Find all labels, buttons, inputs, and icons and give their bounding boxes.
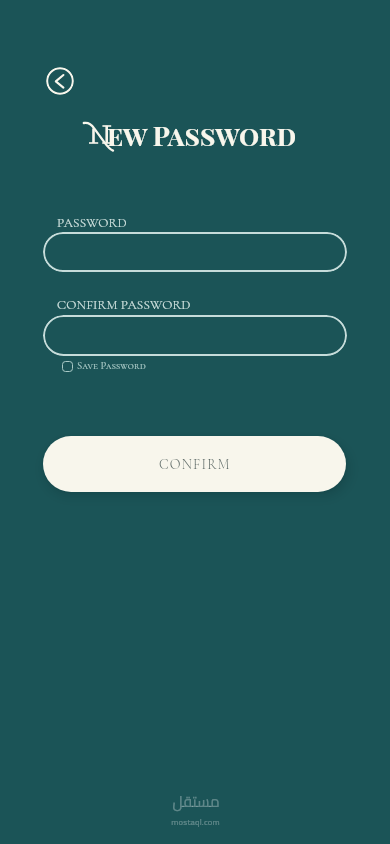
button[interactable]: Back [46, 67, 74, 95]
button[interactable]: Save Password [62, 359, 146, 372]
staticText: PASSWORD [57, 215, 127, 231]
staticText: CONFIRM [159, 456, 231, 473]
button[interactable] [43, 232, 347, 272]
staticText: مستقل [172, 787, 220, 815]
staticText: Save Password [77, 359, 146, 372]
button[interactable]: CONFIRM [43, 436, 346, 492]
staticText: ew Password [107, 117, 297, 152]
button[interactable] [43, 315, 347, 356]
staticText: mostaql.com [171, 814, 220, 830]
staticText: CONFIRM PASSWORD [57, 297, 191, 313]
